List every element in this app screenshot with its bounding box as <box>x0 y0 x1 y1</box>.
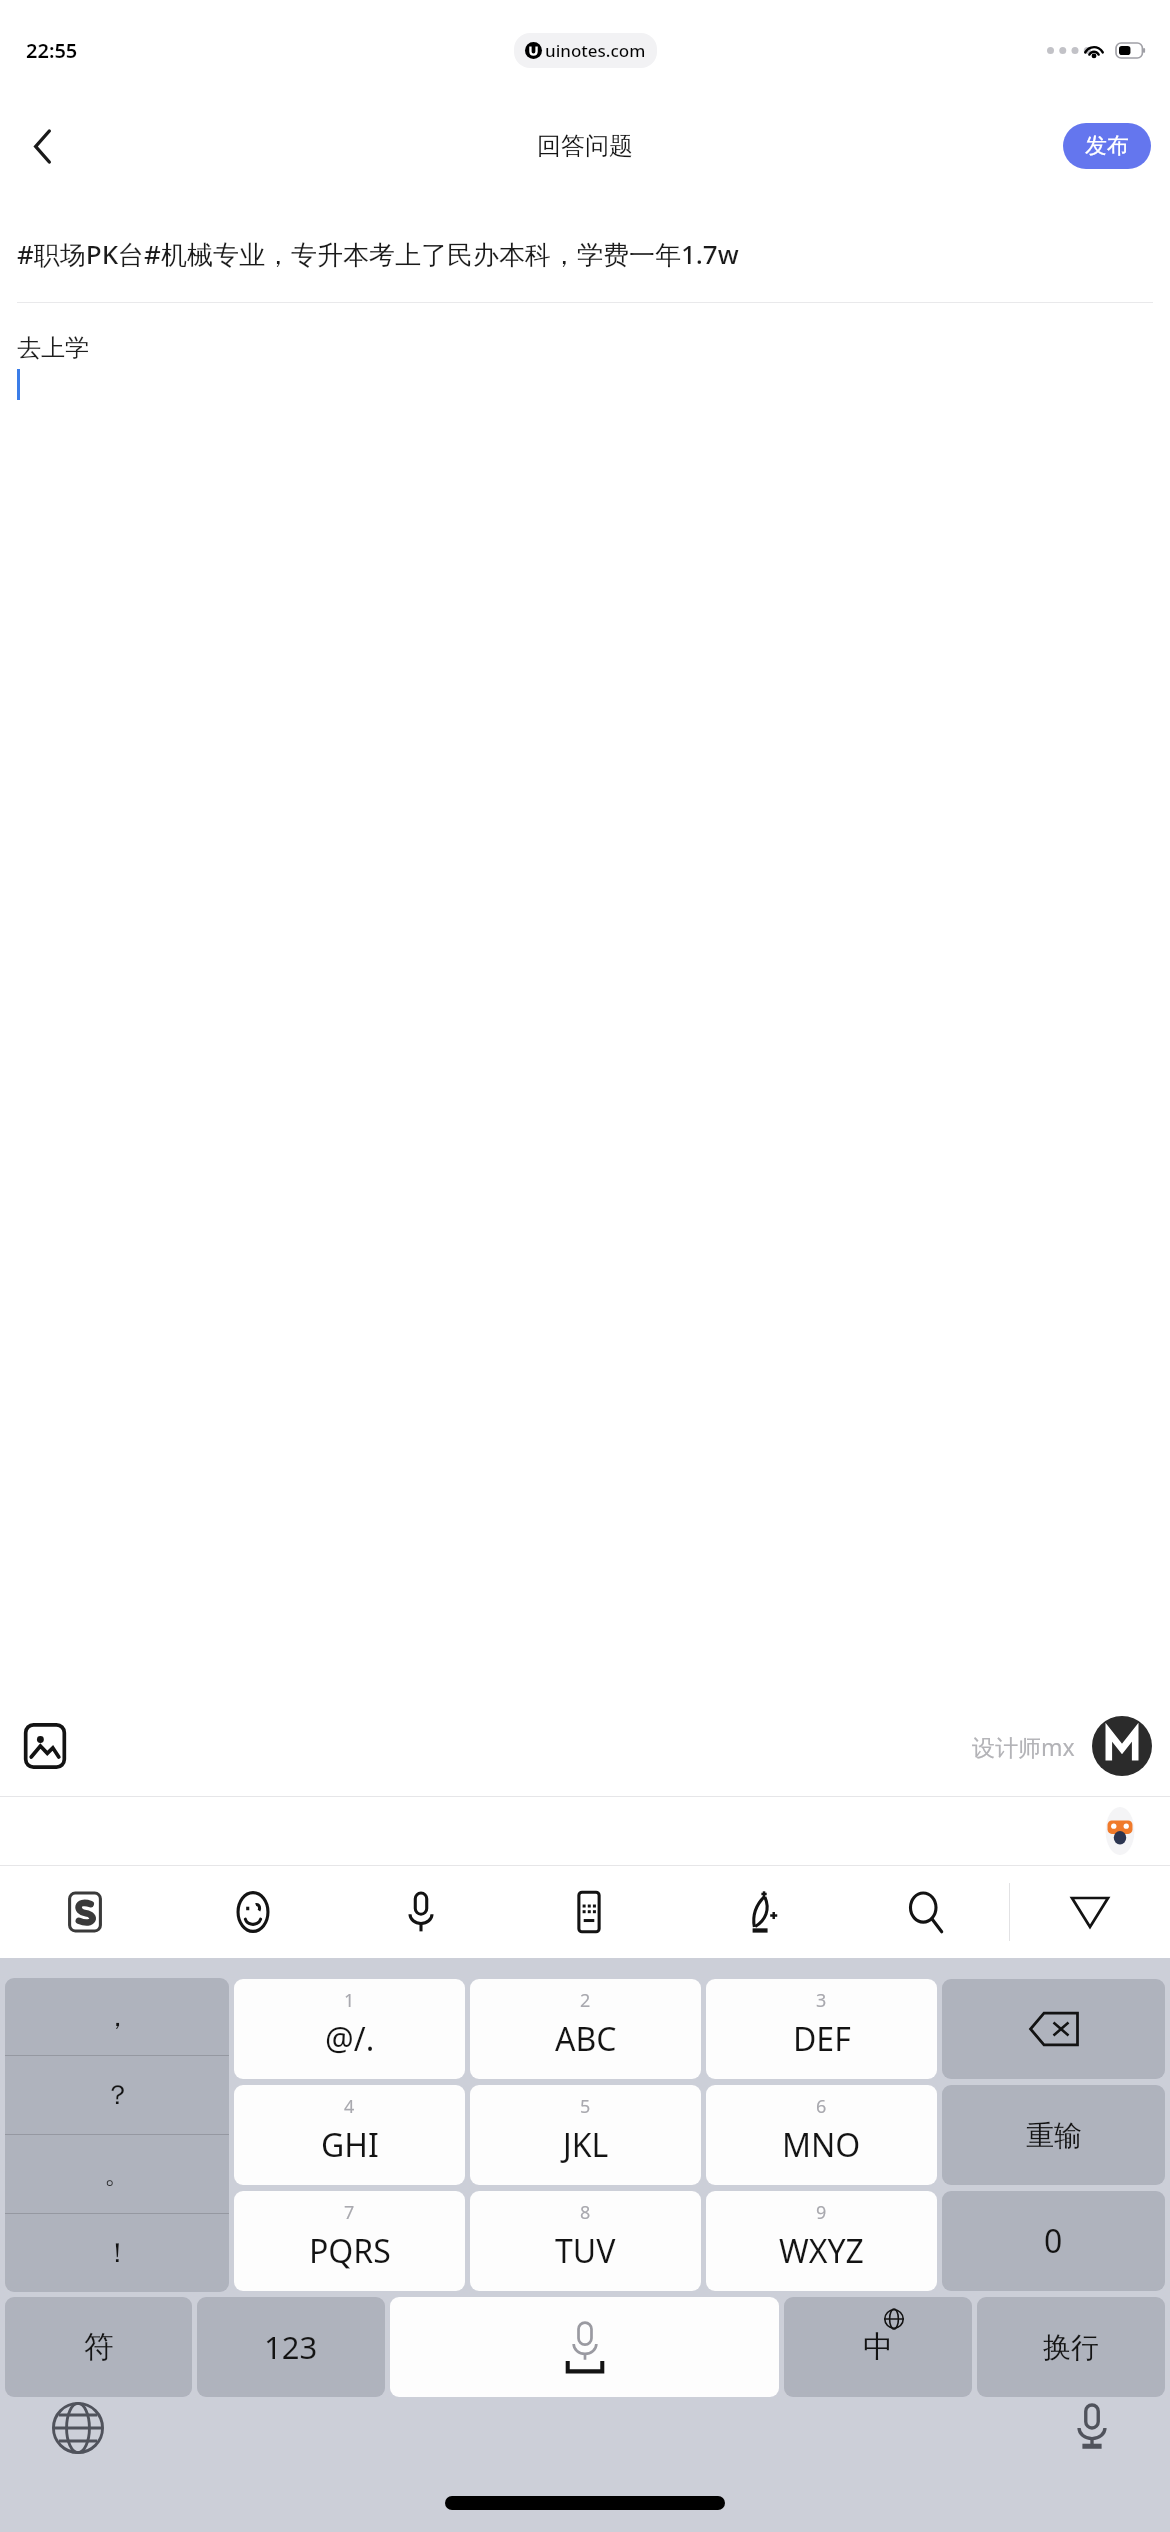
button[interactable]: 123 <box>197 2297 385 2397</box>
button[interactable]: 符 <box>5 2297 192 2397</box>
staticText: 9 <box>816 2200 827 2225</box>
button[interactable]: Keyboard <box>505 1866 673 1958</box>
staticText: MNO <box>782 2123 861 2167</box>
staticText: 22:55 <box>26 37 78 64</box>
button[interactable]: 6 <box>706 2085 937 2185</box>
button[interactable]: 1 <box>234 1979 465 2079</box>
staticText: PQRS <box>309 2229 391 2273</box>
button[interactable]: Voice input <box>1064 2400 1120 2456</box>
staticText: 1 <box>344 1988 355 2013</box>
staticText: 。 <box>104 2157 131 2191</box>
staticText: 重输 <box>1026 2118 1082 2153</box>
button[interactable]: 7 <box>234 2191 465 2291</box>
button[interactable]: Handwriting <box>673 1866 841 1958</box>
staticText: ？ <box>104 2078 131 2112</box>
staticText: 换行 <box>1043 2330 1099 2365</box>
staticText: #职场PK台#机械专业，专升本考上了民办本科，学费一年1.7w <box>17 236 1148 272</box>
staticText: 符 <box>84 2328 114 2366</box>
button[interactable]: Change language <box>50 2400 106 2456</box>
button[interactable]: 重输 <box>942 2085 1165 2185</box>
staticText: ABC <box>555 2017 617 2061</box>
button[interactable]: 2 <box>470 1979 701 2079</box>
button[interactable]: 0 <box>942 2191 1165 2291</box>
staticText: 发布 <box>1085 132 1129 160</box>
staticText: @/. <box>325 2017 375 2061</box>
button[interactable]: Input method <box>0 1866 169 1958</box>
button[interactable]: 5 <box>470 2085 701 2185</box>
staticText: 7 <box>344 2200 355 2225</box>
staticText: 4 <box>344 2094 355 2119</box>
button[interactable]: Hide keyboard <box>1010 1866 1170 1958</box>
staticText: uinotes.com <box>545 39 646 62</box>
staticText: WXYZ <box>779 2229 864 2273</box>
button[interactable]: 4 <box>234 2085 465 2185</box>
staticText: TUV <box>555 2229 616 2273</box>
staticText: 8 <box>580 2200 591 2225</box>
button[interactable]: Backspace <box>942 1979 1165 2079</box>
staticText: 去上学 <box>17 333 89 363</box>
button[interactable]: ， <box>5 1978 229 2292</box>
staticText: 5 <box>580 2094 591 2119</box>
button[interactable]: Voice <box>337 1866 505 1958</box>
staticText: 中 <box>863 2328 893 2366</box>
button[interactable]: Add image <box>18 1719 72 1773</box>
staticText: GHI <box>321 2123 379 2167</box>
staticText: ！ <box>104 2236 131 2270</box>
staticText: 0 <box>1044 2219 1063 2263</box>
button[interactable]: Emoji <box>169 1866 337 1958</box>
staticText: 2 <box>580 1988 591 2013</box>
button[interactable]: 8 <box>470 2191 701 2291</box>
staticText: 6 <box>816 2094 827 2119</box>
staticText: DEF <box>793 2017 851 2061</box>
button[interactable]: Space <box>390 2297 779 2397</box>
staticText: 123 <box>264 2326 318 2368</box>
staticText: 3 <box>816 1988 827 2013</box>
button[interactable]: Language <box>784 2297 972 2397</box>
button[interactable]: Emoji suggestion <box>1092 1803 1148 1859</box>
staticText: ， <box>104 2000 131 2034</box>
staticText: JKL <box>563 2123 609 2167</box>
staticText: 回答问题 <box>537 131 633 161</box>
button[interactable]: 9 <box>706 2191 937 2291</box>
staticText: 设计师mx <box>972 1731 1075 1762</box>
button[interactable]: 3 <box>706 1979 937 2079</box>
button[interactable]: Search <box>841 1866 1009 1958</box>
button[interactable]: 换行 <box>977 2297 1165 2397</box>
button[interactable]: 发布 <box>1063 123 1151 169</box>
button[interactable]: Back <box>10 114 74 178</box>
